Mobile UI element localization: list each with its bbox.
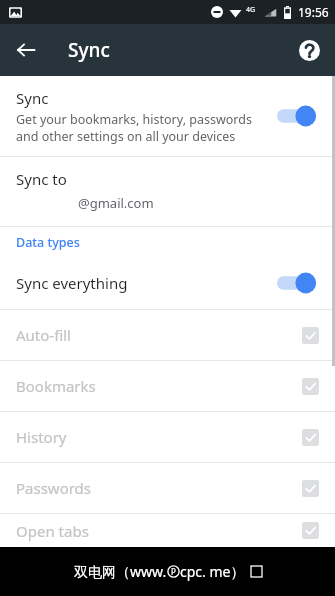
button[interactable]: Sync everything (0, 257, 335, 309)
staticText: Get your bookmarks, history, passwords a… (16, 111, 252, 144)
staticText: 4G (246, 5, 256, 15)
staticText: Sync (68, 37, 110, 63)
staticText: cpc. me） (180, 562, 245, 581)
staticText: @gmail.com (78, 194, 154, 212)
button[interactable]: Auto-fill (0, 310, 335, 360)
staticText: Sync everything (16, 273, 277, 293)
button[interactable]: Open tabs (0, 514, 335, 547)
staticText: Open tabs (16, 521, 302, 541)
button[interactable]: Bookmarks (0, 361, 335, 411)
staticText: Data types (16, 234, 80, 251)
button[interactable]: Sync to (0, 157, 335, 226)
staticText: Auto-fill (16, 325, 302, 345)
button[interactable]: Sync (0, 76, 335, 156)
staticText: 双电网（www. (74, 562, 167, 581)
staticText: P (171, 566, 176, 577)
button[interactable]: Toggle (277, 103, 323, 129)
staticText: 19:56 (298, 4, 329, 20)
staticText: Passwords (16, 478, 302, 498)
button[interactable]: History (0, 412, 335, 462)
staticText: Sync to (16, 169, 67, 189)
button[interactable]: Back (4, 28, 48, 72)
staticText: Sync (16, 88, 49, 108)
button[interactable]: Passwords (0, 463, 335, 513)
button[interactable]: Toggle (277, 270, 323, 296)
staticText: Bookmarks (16, 376, 302, 396)
button[interactable]: Help (287, 28, 331, 72)
staticText: History (16, 427, 302, 447)
